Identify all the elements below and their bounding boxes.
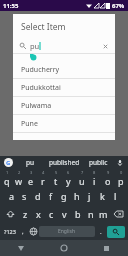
staticText: e xyxy=(28,175,34,187)
staticText: 5 xyxy=(55,170,58,175)
staticText: v xyxy=(62,208,67,220)
button[interactable]: s xyxy=(18,187,31,205)
staticText: ?123 xyxy=(4,228,16,235)
button[interactable]: 8 xyxy=(88,169,101,187)
staticText: Pulwama xyxy=(21,101,52,111)
button[interactable]: Backspace xyxy=(110,205,127,223)
button[interactable]: 3 xyxy=(25,169,37,187)
button[interactable]: f xyxy=(44,187,57,205)
button[interactable]: Search xyxy=(107,226,125,238)
button[interactable]: a xyxy=(6,187,18,205)
staticText: m xyxy=(99,208,108,220)
button[interactable]: Pudukkottai xyxy=(13,79,115,97)
staticText: x xyxy=(36,208,41,220)
button[interactable]: h xyxy=(70,187,83,205)
staticText: 9 xyxy=(107,170,110,175)
staticText: o xyxy=(105,175,111,187)
button[interactable]: 2 xyxy=(13,169,25,187)
staticText: g xyxy=(61,190,67,202)
staticText: 1 xyxy=(6,170,9,175)
staticText: a xyxy=(9,190,15,202)
staticText: 8 xyxy=(93,170,96,175)
staticText: s xyxy=(22,190,27,202)
staticText: z xyxy=(23,208,28,220)
button[interactable]: x xyxy=(32,205,45,223)
staticText: i xyxy=(93,175,96,187)
staticText: Puducherry xyxy=(21,65,60,75)
button[interactable]: Voice input xyxy=(115,158,124,167)
button[interactable]: m xyxy=(97,205,110,223)
staticText: public xyxy=(89,158,108,167)
staticText: Pudukkottai xyxy=(21,83,61,93)
button[interactable]: Recents xyxy=(85,240,128,256)
staticText: t xyxy=(54,175,58,187)
staticText: 6 xyxy=(67,170,70,175)
staticText: Select Item xyxy=(21,21,66,33)
staticText: 0 xyxy=(120,170,123,175)
button[interactable]: ?123 xyxy=(2,223,18,240)
button[interactable]: 5 xyxy=(49,169,62,187)
button[interactable]: English xyxy=(39,226,95,237)
staticText: q xyxy=(4,175,10,187)
staticText: pu xyxy=(26,158,35,167)
button[interactable]: Shift xyxy=(1,205,19,223)
staticText: 3 xyxy=(30,170,33,175)
button[interactable]: c xyxy=(45,205,58,223)
button[interactable]: Pulwama xyxy=(13,97,115,115)
button[interactable]: l xyxy=(109,187,122,205)
staticText: n xyxy=(88,208,94,220)
button[interactable]: j xyxy=(83,187,96,205)
button[interactable]: k xyxy=(96,187,109,205)
staticText: h xyxy=(74,190,80,202)
button[interactable]: 4 xyxy=(37,169,49,187)
button[interactable]: 9 xyxy=(101,169,114,187)
button[interactable]: 6 xyxy=(62,169,75,187)
button[interactable]: . xyxy=(95,223,106,240)
staticText: English xyxy=(58,228,76,235)
button[interactable]: g xyxy=(57,187,70,205)
staticText: r xyxy=(41,175,45,187)
button[interactable]: Clear xyxy=(102,43,109,50)
staticText: b xyxy=(75,208,81,220)
staticText: Pune xyxy=(21,119,38,129)
button[interactable]: pu xyxy=(13,158,47,167)
button[interactable]: 7 xyxy=(75,169,88,187)
button[interactable]: Google xyxy=(4,158,13,167)
button[interactable]: d xyxy=(31,187,44,205)
staticText: l xyxy=(114,190,117,202)
button[interactable]: Pune xyxy=(13,115,115,133)
staticText: y xyxy=(66,175,71,187)
staticText: 11:55 xyxy=(3,2,19,10)
staticText: . xyxy=(100,228,102,236)
other: Search xyxy=(20,43,26,49)
staticText: 67% xyxy=(112,2,125,10)
staticText: k xyxy=(100,190,105,202)
button[interactable]: public xyxy=(81,158,115,167)
button[interactable]: published xyxy=(47,158,81,167)
button[interactable]: Home xyxy=(42,240,85,256)
staticText: w xyxy=(15,175,23,187)
button[interactable]: Back xyxy=(0,240,42,256)
staticText: , xyxy=(22,228,24,236)
button[interactable]: b xyxy=(71,205,84,223)
staticText: f xyxy=(49,190,53,202)
button[interactable]: 1 xyxy=(1,169,13,187)
button[interactable]: , xyxy=(18,223,27,240)
button[interactable]: 0 xyxy=(114,169,127,187)
button[interactable]: z xyxy=(19,205,32,223)
button[interactable]: Puducherry xyxy=(13,61,115,79)
button[interactable]: n xyxy=(84,205,97,223)
button[interactable]: v xyxy=(58,205,71,223)
staticText: u xyxy=(79,175,85,187)
staticText: d xyxy=(35,190,41,202)
staticText: 2 xyxy=(18,170,21,175)
staticText: published xyxy=(49,158,80,167)
staticText: c xyxy=(49,208,54,220)
button[interactable]: Change language xyxy=(27,223,39,240)
staticText: pu xyxy=(30,41,40,51)
button[interactable]: Search xyxy=(13,39,115,53)
staticText: 7 xyxy=(81,170,84,175)
staticText: j xyxy=(88,190,91,202)
